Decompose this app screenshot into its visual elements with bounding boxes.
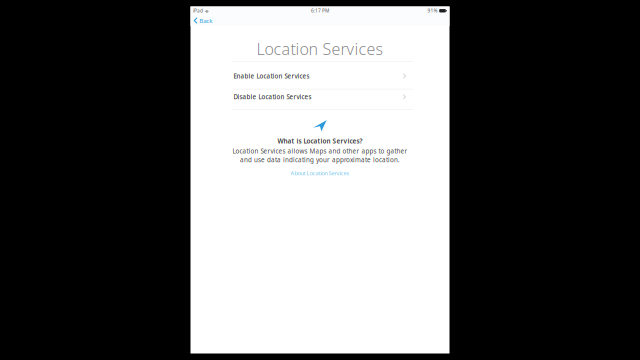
staticText: 91% [427,7,437,14]
staticText: About Location Services [290,169,349,177]
staticText: Location Services [256,38,383,60]
staticText: 6:17 PM [311,7,329,14]
staticText: What is Location Services? [277,136,362,145]
button[interactable]: Disable Location Services [232,89,413,109]
staticText: Location Services allows Maps and other … [232,147,407,155]
button[interactable]: Back [190,15,216,26]
staticText: Back [199,16,212,25]
staticText: and use data indicating your approximate… [240,156,400,164]
button[interactable]: Enable Location Services [232,62,413,89]
button[interactable]: About Location Services [290,169,349,177]
staticText: iPad [193,7,203,14]
staticText: Disable Location Services [233,93,311,101]
staticText: Enable Location Services [233,72,309,80]
